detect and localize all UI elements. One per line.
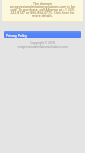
button[interactable]: Privacy Policy <box>4 31 81 38</box>
staticText: The domain congressionalrelationsolution… <box>2 1 83 18</box>
staticText: Privacy Policy <box>6 33 27 37</box>
staticText: Copyright © 2018 congressionalrelationso… <box>0 41 85 49</box>
